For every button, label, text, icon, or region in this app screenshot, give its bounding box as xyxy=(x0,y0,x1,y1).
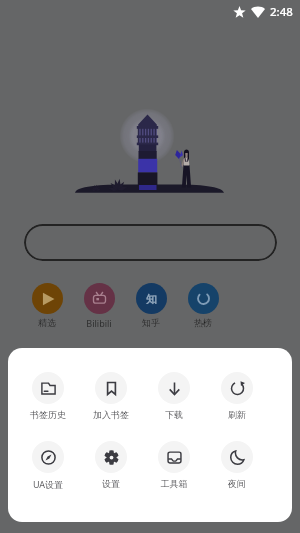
staticText: 刷新 xyxy=(206,409,268,420)
button[interactable]: 下载 xyxy=(143,372,205,420)
button[interactable]: 夜间 xyxy=(206,441,268,489)
staticText: 工具箱 xyxy=(143,478,205,489)
staticText: 书签历史 xyxy=(17,409,79,420)
staticText: 热榜 xyxy=(179,317,227,328)
staticText: UA设置 xyxy=(17,478,79,490)
button[interactable] xyxy=(24,224,277,261)
staticText: 设置 xyxy=(80,478,142,489)
button[interactable]: Bilibili xyxy=(75,283,123,329)
button[interactable]: UA设置 xyxy=(17,441,79,490)
staticText: 下载 xyxy=(143,409,205,420)
staticText: 知 xyxy=(146,292,157,306)
button[interactable]: 刷新 xyxy=(206,372,268,420)
button[interactable]: 知 xyxy=(127,283,175,328)
staticText: 精选 xyxy=(23,317,71,328)
button[interactable]: 书签历史 xyxy=(17,372,79,420)
button[interactable]: 加入书签 xyxy=(80,372,142,420)
staticText: 加入书签 xyxy=(80,409,142,420)
staticText: 夜间 xyxy=(206,478,268,489)
button[interactable]: 精选 xyxy=(23,283,71,328)
button[interactable]: 热榜 xyxy=(179,283,227,328)
staticText: Bilibili xyxy=(75,317,123,329)
staticText: 知乎 xyxy=(127,317,175,328)
button[interactable]: 工具箱 xyxy=(143,441,205,489)
button[interactable]: 设置 xyxy=(80,441,142,489)
staticText: 2:48 xyxy=(270,4,293,20)
